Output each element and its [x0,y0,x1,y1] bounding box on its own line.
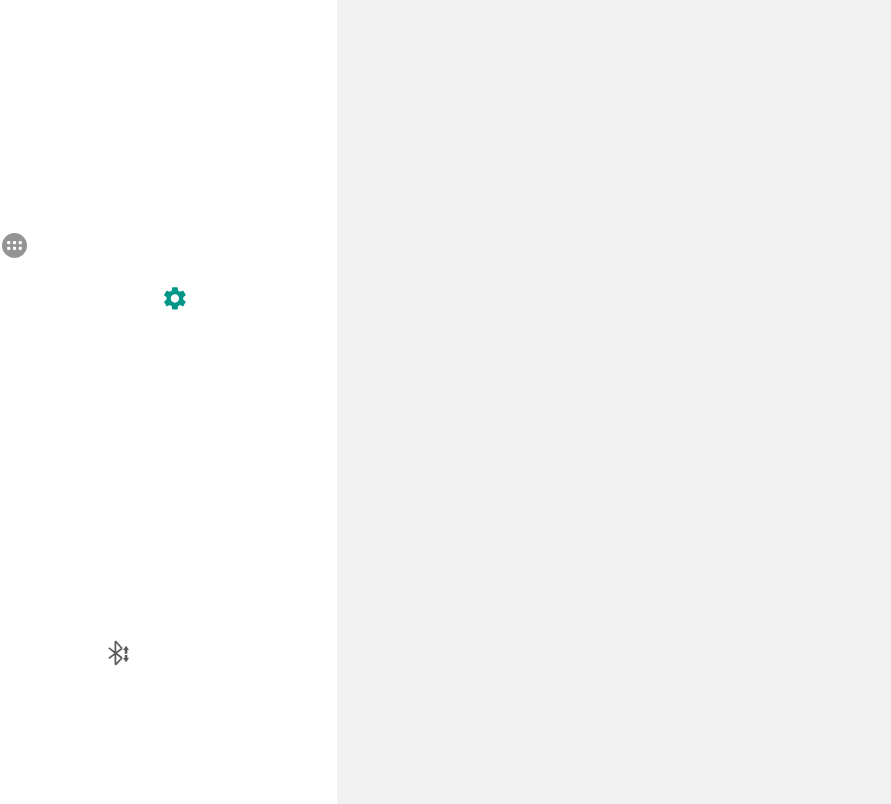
button[interactable]: Settings [160,283,190,313]
button[interactable]: Bluetooth [105,638,133,668]
button[interactable]: Apps [2,233,27,258]
